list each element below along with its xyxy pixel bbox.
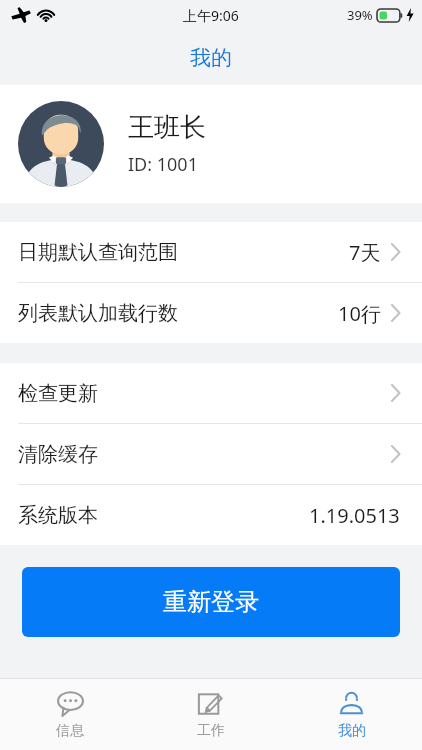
staticText: 我的 <box>338 722 366 740</box>
other: 我的 <box>338 690 365 717</box>
other: 工作 <box>197 690 224 717</box>
button[interactable]: 工作 <box>140 679 281 750</box>
button[interactable]: 列表默认加载行数 <box>0 283 422 343</box>
button[interactable]: 王班长 <box>0 85 422 203</box>
staticText: 王班长 <box>128 111 206 144</box>
staticText: 10行 <box>338 300 381 327</box>
staticText: 1.19.0513 <box>309 502 400 529</box>
staticText: 检查更新 <box>18 381 98 406</box>
staticText: 系统版本 <box>18 503 98 528</box>
button[interactable]: 日期默认查询范围 <box>0 222 422 282</box>
button[interactable]: 系统版本 <box>0 485 422 545</box>
staticText: ID: 1001 <box>128 152 198 177</box>
staticText: 39% <box>347 6 373 24</box>
staticText: 重新登录 <box>163 587 259 617</box>
button[interactable]: 检查更新 <box>0 363 422 423</box>
button[interactable]: 信息 <box>0 679 140 750</box>
other: 信息 <box>57 690 84 717</box>
staticText: 清除缓存 <box>18 442 98 467</box>
staticText: 7天 <box>349 239 381 266</box>
staticText: 我的 <box>190 45 232 71</box>
button[interactable]: 重新登录 <box>22 567 400 637</box>
staticText: 日期默认查询范围 <box>18 240 178 265</box>
button[interactable]: 清除缓存 <box>0 424 422 484</box>
staticText: 信息 <box>56 722 84 740</box>
staticText: 上午9:06 <box>183 6 239 25</box>
button[interactable]: 我的 <box>281 679 422 750</box>
staticText: 列表默认加载行数 <box>18 301 178 326</box>
staticText: 工作 <box>197 722 225 740</box>
